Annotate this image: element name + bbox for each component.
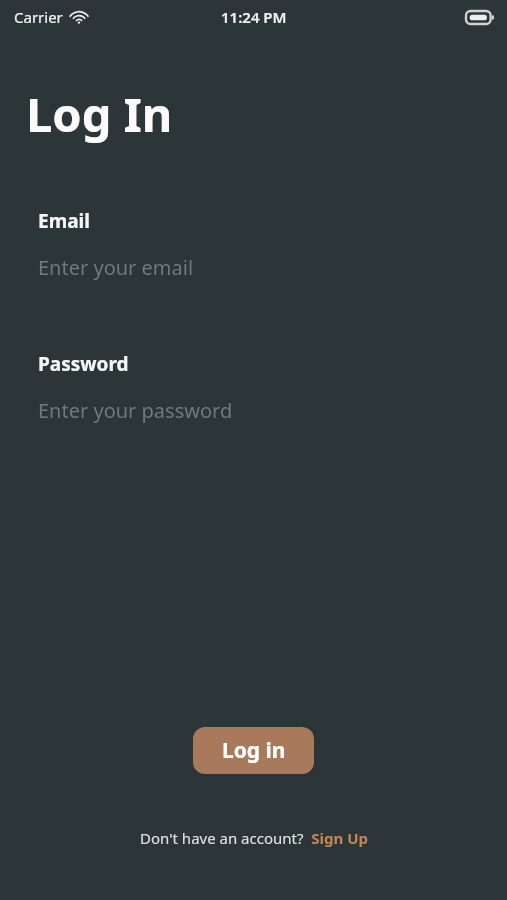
- staticText: Don't have an account? Sign Up: [140, 828, 368, 848]
- other: Battery full: [466, 11, 494, 24]
- staticText: Carrier: [14, 7, 63, 27]
- staticText: Enter your password: [38, 397, 233, 424]
- staticText: Enter your email: [38, 254, 194, 281]
- button[interactable]: Password: [0, 351, 507, 424]
- staticText: Log In: [26, 82, 173, 146]
- staticText: Email: [38, 208, 90, 234]
- staticText: Password: [38, 351, 129, 377]
- staticText: Log in: [222, 736, 286, 765]
- button[interactable]: Log in: [193, 727, 314, 774]
- staticText: 11:24 PM: [221, 7, 287, 27]
- other: Wi-Fi signal: [70, 10, 88, 24]
- button[interactable]: Email: [0, 208, 507, 281]
- button[interactable]: Don't have an account? Sign Up: [140, 828, 368, 848]
